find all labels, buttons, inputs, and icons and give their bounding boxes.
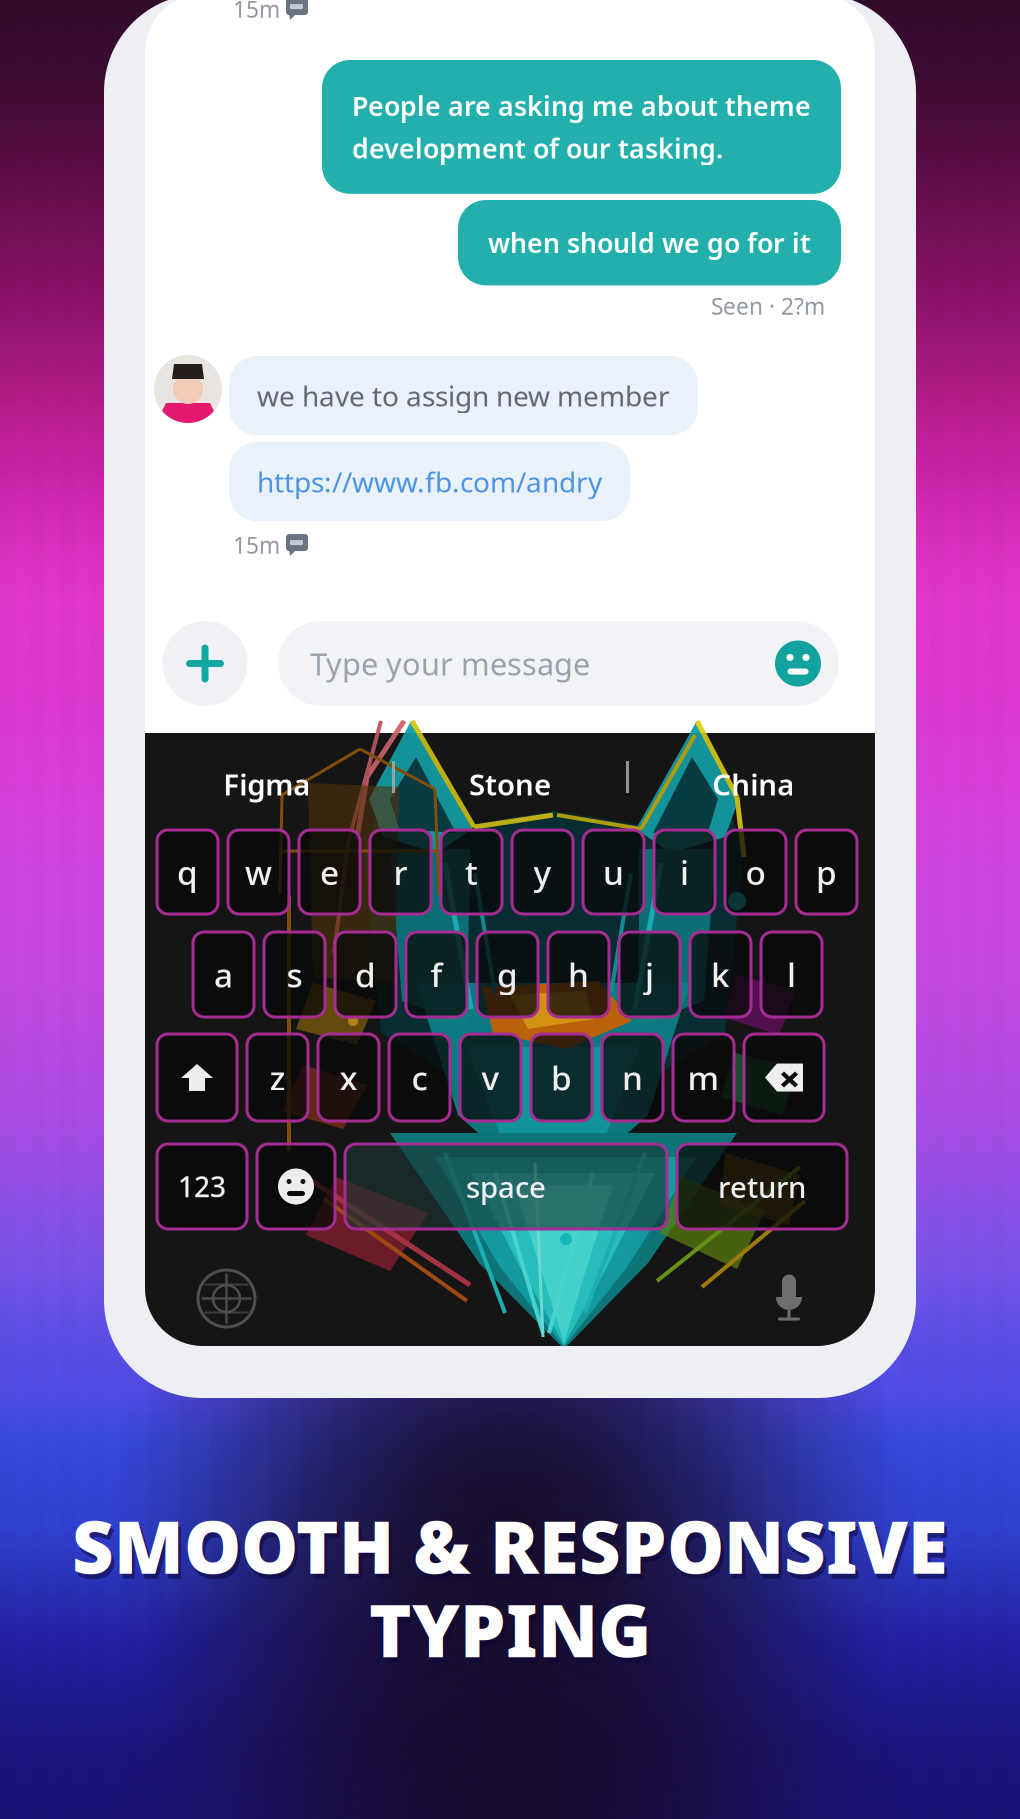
button[interactable]: Emoji [257,1144,335,1229]
button[interactable]: China [632,751,875,817]
button[interactable]: l [761,932,822,1017]
button[interactable]: b [531,1034,592,1121]
button[interactable]: k [690,932,751,1017]
staticText: e [320,850,339,894]
staticText: r [393,850,407,894]
staticText: return [718,1167,806,1206]
button[interactable]: Stone [388,751,632,817]
staticText: f [430,952,442,997]
staticText: TYPING [372,1587,654,1682]
staticText: w [245,850,272,894]
button[interactable]: Add attachment [162,621,248,706]
staticText: o [745,850,765,894]
button[interactable]: m [673,1034,734,1121]
staticText: b [551,1055,572,1100]
button[interactable]: g [477,932,538,1017]
button[interactable]: Figma [145,751,388,817]
staticText: Seen · 2?m [711,291,825,321]
staticText: space [466,1167,546,1206]
button[interactable]: d [335,932,396,1017]
staticText: d [355,952,376,997]
button[interactable]: x [318,1034,379,1121]
staticText: 15m [233,0,280,24]
button[interactable]: h [548,932,609,1017]
staticText: SMOOTH & RESPONSIVE [75,1503,951,1599]
button[interactable]: f [406,932,467,1017]
staticText: People are asking me about theme develop… [352,88,811,166]
button[interactable]: n [602,1034,663,1121]
button[interactable]: 123 [157,1144,247,1229]
staticText: c [411,1055,427,1100]
staticText: y [533,850,551,894]
staticText: when should we go for it [488,225,811,260]
button[interactable]: i [654,830,715,914]
button[interactable]: Dictate [765,1264,813,1330]
staticText: m [687,1055,719,1100]
button[interactable]: w [228,830,289,914]
button[interactable]: z [247,1034,308,1121]
button[interactable]: return [677,1144,847,1229]
button[interactable]: r [370,830,431,914]
button[interactable]: Type your message [278,621,839,706]
button[interactable]: Switch keyboard [198,1270,255,1327]
button[interactable]: Shift [157,1034,237,1121]
staticText: x [339,1055,357,1100]
staticText: SMOOTH & RESPONSIVE [72,1498,948,1594]
staticText: z [269,1055,285,1100]
staticText: g [497,952,518,997]
staticText: k [711,952,730,997]
staticText: Type your message [310,643,590,684]
button[interactable]: t [441,830,502,914]
staticText: t [465,850,478,894]
staticText: h [568,952,589,997]
staticText: j [645,952,654,997]
staticText: 123 [178,1168,226,1205]
button[interactable]: a [193,932,254,1017]
staticText: China [712,764,794,803]
staticText: Stone [469,764,551,803]
staticText: 15m [233,530,280,560]
button[interactable]: u [583,830,644,914]
staticText: Figma [223,764,310,803]
staticText: i [680,850,689,894]
button[interactable]: Delete [744,1034,824,1121]
staticText: a [214,952,233,997]
button[interactable]: s [264,932,325,1017]
button[interactable]: j [619,932,680,1017]
staticText: q [177,850,198,894]
staticText: TYPING [369,1582,651,1677]
staticText: u [603,850,624,894]
staticText: s [286,952,302,997]
button[interactable]: v [460,1034,521,1121]
button[interactable]: e [299,830,360,914]
staticText: we have to assign new member [257,377,670,414]
staticText: p [816,850,837,894]
staticText: https://www.fb.com/andry [257,463,602,500]
button[interactable]: p [796,830,857,914]
staticText: l [787,952,796,997]
staticText: v [481,1055,499,1100]
staticText: n [622,1055,643,1100]
button[interactable]: o [725,830,786,914]
button[interactable]: q [157,830,218,914]
button[interactable]: c [389,1034,450,1121]
button[interactable]: y [512,830,573,914]
button[interactable]: space [345,1144,667,1229]
